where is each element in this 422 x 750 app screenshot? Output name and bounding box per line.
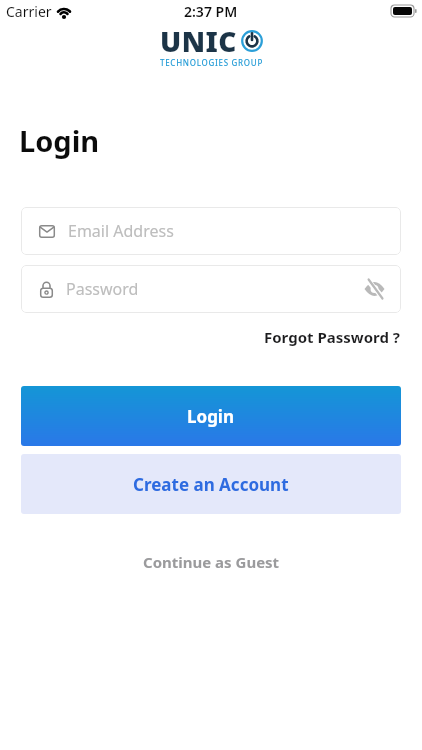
staticText: Email Address bbox=[68, 220, 174, 242]
staticText: Create an Account bbox=[133, 473, 289, 496]
staticText: TECHNOLOGIES GROUP bbox=[160, 57, 263, 68]
button[interactable]: Email Address bbox=[21, 207, 401, 255]
button[interactable]: Forgot Password ? bbox=[264, 327, 400, 347]
button[interactable]: Password bbox=[21, 265, 401, 313]
button[interactable]: Login bbox=[21, 386, 401, 446]
staticText: Password bbox=[66, 278, 139, 300]
button[interactable] bbox=[364, 280, 385, 298]
staticText: Login bbox=[19, 121, 100, 160]
staticText: UNIC bbox=[160, 22, 238, 60]
button[interactable]: Create an Account bbox=[21, 454, 401, 514]
staticText: 2:37 PM bbox=[184, 2, 238, 21]
staticText: Login bbox=[187, 405, 235, 428]
button[interactable]: Continue as Guest bbox=[143, 552, 280, 572]
staticText: Carrier bbox=[6, 2, 52, 21]
